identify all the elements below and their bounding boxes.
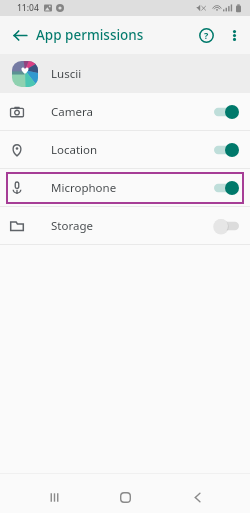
staticText: Storage (51, 218, 93, 234)
button[interactable]: Storage (0, 207, 250, 245)
button[interactable]: On (214, 142, 239, 158)
staticText: Camera (51, 104, 93, 120)
button[interactable]: More options (222, 23, 246, 47)
staticText: Luscii (51, 66, 82, 82)
button[interactable]: Navigate up (7, 22, 33, 48)
button[interactable]: Home (107, 479, 143, 513)
button[interactable]: Back (179, 479, 215, 513)
staticText: App permissions (36, 26, 144, 44)
button[interactable]: Off (214, 218, 239, 234)
staticText: 11:04 (17, 2, 39, 14)
button[interactable]: Help (194, 23, 218, 47)
button[interactable]: Microphone (6, 172, 244, 204)
staticText: Location (51, 142, 98, 158)
staticText: Microphone (51, 180, 117, 196)
button[interactable]: Location (0, 131, 250, 169)
button[interactable]: On (214, 104, 239, 120)
button[interactable]: Camera (0, 93, 250, 131)
button[interactable]: On (214, 180, 239, 196)
staticText: ? (204, 29, 209, 41)
button[interactable]: Recent apps (36, 479, 72, 513)
button[interactable]: Luscii (0, 54, 250, 93)
